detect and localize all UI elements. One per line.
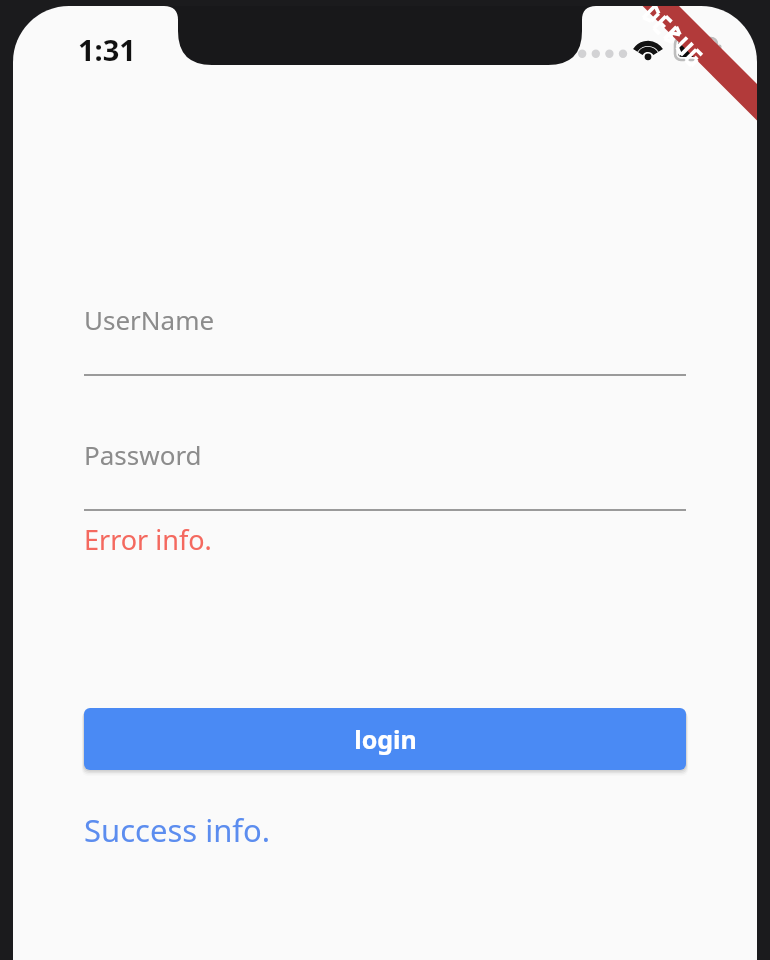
button[interactable]: login xyxy=(84,708,686,770)
staticText: 1:31 xyxy=(78,30,136,69)
staticText: Success info. xyxy=(84,809,271,851)
staticText: Error info. xyxy=(84,521,212,558)
staticText: UserName xyxy=(84,302,215,337)
staticText: login xyxy=(354,722,417,756)
staticText: Password xyxy=(84,437,202,472)
